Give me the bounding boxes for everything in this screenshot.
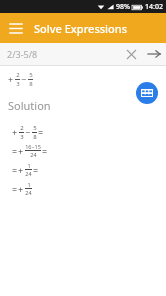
staticText: 16−15 <box>25 143 41 150</box>
staticText: Solution <box>8 98 51 113</box>
button[interactable]: Open navigation drawer <box>5 17 27 39</box>
staticText: 2 <box>20 124 24 132</box>
staticText: + <box>18 164 24 176</box>
staticText: − <box>25 126 31 138</box>
staticText: 24 <box>25 170 32 177</box>
staticText: + <box>12 126 18 138</box>
staticText: 3 <box>20 133 24 141</box>
staticText: 24 <box>30 151 37 158</box>
button[interactable]: Show keyboard <box>136 82 158 104</box>
staticText: + <box>8 73 14 85</box>
staticText: = <box>12 183 18 195</box>
staticText: 8 <box>33 133 37 141</box>
staticText: = <box>12 145 18 157</box>
staticText: − <box>21 73 27 85</box>
staticText: 5 <box>33 124 37 132</box>
staticText: 1 <box>27 162 31 169</box>
staticText: + <box>18 183 24 195</box>
staticText: Solve Expressions <box>34 21 128 36</box>
button[interactable]: Clear <box>120 43 142 65</box>
staticText: 14:02 <box>145 2 163 12</box>
button[interactable]: Solve <box>142 43 166 65</box>
staticText: = <box>42 145 48 157</box>
staticText: 2 <box>16 71 20 79</box>
staticText: = <box>12 164 18 176</box>
staticText: 3 <box>16 80 20 88</box>
staticText: 1 <box>27 181 31 188</box>
button[interactable]: 2/3-5/8 <box>7 48 120 60</box>
staticText: 98% <box>116 2 130 12</box>
staticText: = <box>38 126 44 138</box>
staticText: + <box>18 145 24 157</box>
staticText: 24 <box>25 189 32 196</box>
staticText: = <box>33 164 39 176</box>
staticText: 5 <box>29 71 33 79</box>
staticText: 8 <box>29 80 33 88</box>
